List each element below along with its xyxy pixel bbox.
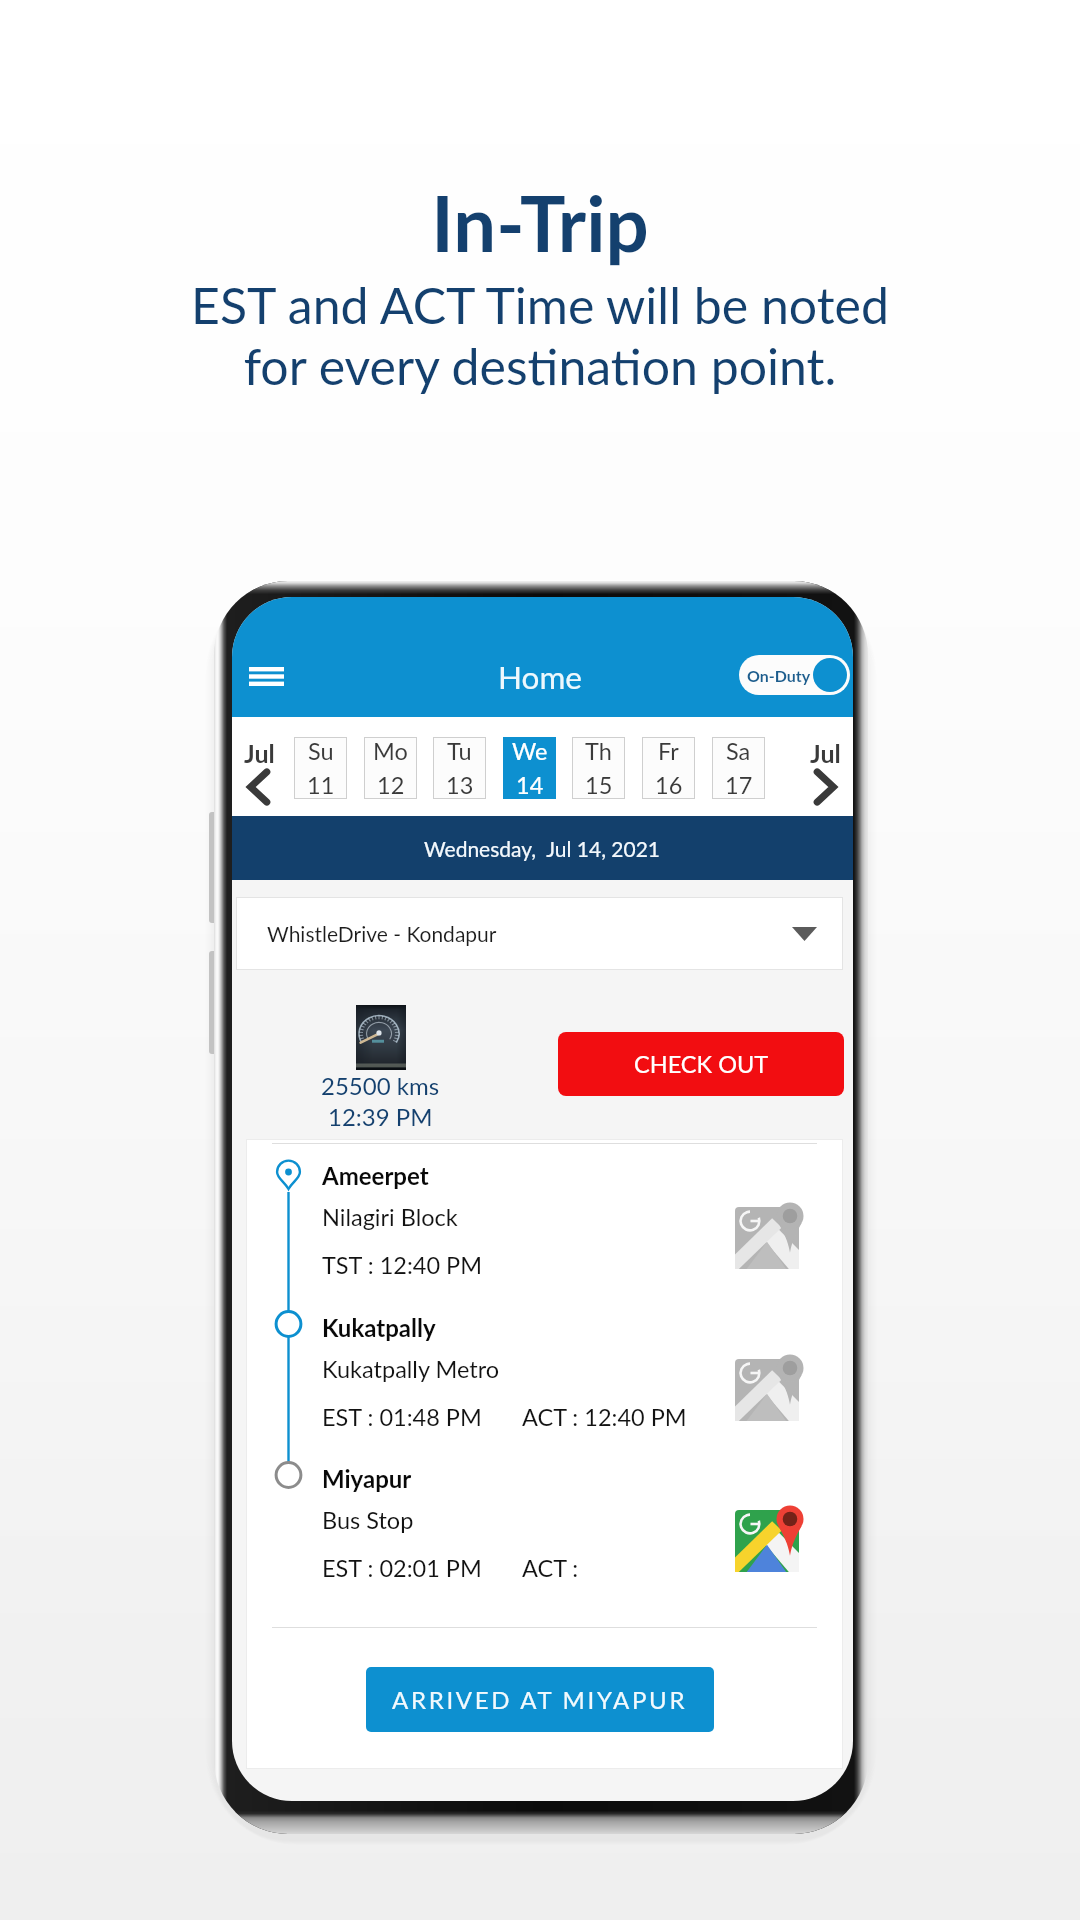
staticText: ACT : [522, 1554, 585, 1582]
staticText: Tu [447, 737, 472, 765]
staticText: 12:39 PM [328, 1102, 433, 1131]
button[interactable]: Tu [433, 737, 486, 799]
staticText: Fr [658, 737, 679, 765]
button[interactable]: We [503, 737, 556, 799]
button[interactable]: Open location in Google Maps [735, 1199, 815, 1279]
staticText: ACT : 12:40 PM [522, 1403, 687, 1431]
staticText: 25500 kms [321, 1071, 440, 1100]
staticText: WhistleDrive - Kondapur [267, 921, 497, 946]
staticText: CHECK OUT [634, 1050, 769, 1078]
staticText: Wednesday, Jul 14, 2021 [424, 836, 661, 861]
staticText: 16 [655, 771, 683, 799]
staticText: ARRIVED AT MIYAPUR [392, 1685, 688, 1714]
staticText: In-Trip [0, 177, 1080, 268]
staticText: Sa [726, 737, 751, 765]
staticText: 13 [446, 771, 474, 799]
staticText: On-Duty [747, 666, 811, 685]
button[interactable]: On-Duty [739, 655, 850, 695]
staticText: 14 [516, 771, 544, 799]
staticText: Kukatpally [322, 1313, 436, 1342]
staticText: 12 [377, 771, 405, 799]
staticText: 11 [307, 771, 335, 799]
button[interactable]: Open location in Google Maps [735, 1502, 815, 1582]
staticText: Home [498, 658, 582, 696]
button[interactable]: ARRIVED AT MIYAPUR [366, 1667, 714, 1732]
button[interactable]: Open location in Google Maps [735, 1351, 815, 1431]
button[interactable]: Fr [642, 737, 695, 799]
staticText: Th [585, 737, 612, 765]
staticText: Ameerpet [322, 1161, 429, 1190]
staticText: Jul [244, 738, 275, 768]
staticText: We [512, 737, 548, 765]
staticText: 15 [585, 771, 613, 799]
staticText: EST : 02:01 PM [322, 1554, 482, 1582]
button[interactable]: Th [572, 737, 625, 799]
staticText: TST : 12:40 PM [322, 1251, 482, 1279]
button[interactable]: CHECK OUT [558, 1032, 844, 1096]
staticText: Mo [373, 737, 408, 765]
staticText: Jul [810, 738, 841, 768]
button[interactable]: Open navigation menu [237, 651, 296, 701]
button[interactable]: Su [294, 737, 347, 799]
button[interactable]: Mo [364, 737, 417, 799]
button[interactable]: WhistleDrive - Kondapur [236, 897, 843, 970]
staticText: EST : 01:48 PM [322, 1403, 482, 1431]
button[interactable]: Odometer photo [356, 1005, 406, 1070]
button[interactable]: Next week [799, 719, 851, 814]
staticText: Kukatpally Metro [322, 1355, 500, 1383]
staticText: 17 [725, 771, 753, 799]
staticText: Miyapur [322, 1464, 412, 1493]
staticText: EST and ACT Time will be noted for every… [0, 275, 1080, 396]
button[interactable]: Sa [712, 737, 765, 799]
staticText: Su [308, 737, 334, 765]
staticText: Nilagiri Block [322, 1203, 458, 1231]
staticText: Bus Stop [322, 1506, 414, 1534]
button[interactable]: Previous week [233, 719, 285, 814]
